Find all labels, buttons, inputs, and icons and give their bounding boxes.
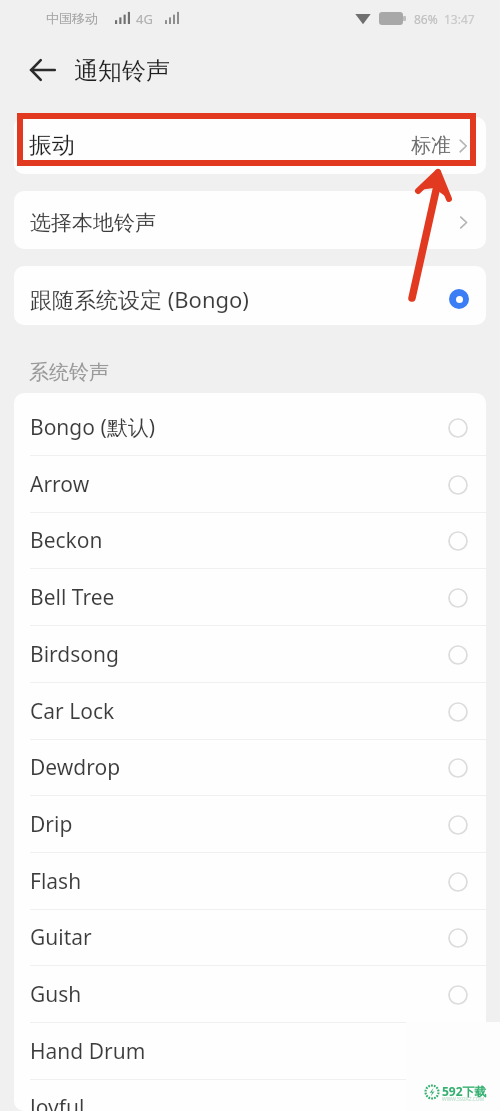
staticText: Joyful [30, 1093, 85, 1111]
button[interactable]: Birdsong [14, 626, 486, 683]
staticText: Drip [30, 810, 73, 839]
staticText: Flash [30, 867, 82, 896]
button[interactable]: Joyful [14, 1079, 486, 1111]
button[interactable]: Beckon [14, 512, 486, 569]
staticText: Arrow [30, 470, 90, 499]
staticText: 592下载 [442, 1083, 487, 1099]
staticText: 86% [414, 11, 438, 27]
button[interactable]: Hand Drum [14, 1023, 486, 1080]
staticText: Gush [30, 980, 82, 1009]
staticText: 跟随系统设定 (Bongo) [30, 284, 249, 314]
staticText: WWW.592AZ.COM [442, 1096, 485, 1103]
button[interactable]: Car Lock [14, 683, 486, 740]
button[interactable]: Dewdrop [14, 739, 486, 796]
staticText: 系统铃声 [29, 360, 109, 385]
staticText: Birdsong [30, 640, 119, 669]
button[interactable]: Bongo (默认) [14, 399, 486, 456]
button[interactable]: Gush [14, 966, 486, 1023]
staticText: 中国移动 [46, 10, 98, 26]
staticText: Hand Drum [30, 1037, 146, 1066]
staticText: 13:47 [444, 11, 475, 27]
button[interactable]: 振动 [14, 117, 486, 174]
staticText: Dewdrop [30, 753, 121, 782]
staticText: Bell Tree [30, 583, 115, 612]
staticText: 选择本地铃声 [30, 210, 156, 236]
staticText: Bongo (默认) [30, 413, 156, 442]
button[interactable]: Back [22, 53, 62, 87]
button[interactable]: Drip [14, 796, 486, 853]
button[interactable]: 跟随系统设定 (Bongo) [14, 266, 486, 325]
button[interactable]: Arrow [14, 456, 486, 513]
staticText: 标准 [411, 133, 451, 158]
button[interactable]: 选择本地铃声 [14, 191, 486, 249]
button[interactable]: Guitar [14, 909, 486, 966]
staticText: Guitar [30, 923, 92, 952]
staticText: Beckon [30, 526, 103, 555]
button[interactable]: Flash [14, 853, 486, 910]
staticText: 振动 [29, 131, 75, 160]
staticText: 通知铃声 [74, 56, 170, 86]
staticText: 4G [136, 10, 153, 28]
staticText: Car Lock [30, 697, 115, 726]
button[interactable]: Bell Tree [14, 569, 486, 626]
